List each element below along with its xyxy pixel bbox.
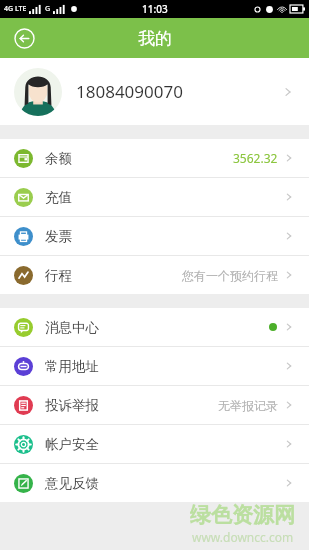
button[interactable]: 余额 [0,139,309,177]
staticText: 我的 [138,28,172,49]
staticText: 常用地址 [45,358,99,375]
button[interactable]: 18084090070 [0,58,309,125]
staticText: www.downcc.com [192,529,294,545]
button[interactable]: 帐户安全 [0,425,309,463]
staticText: 3562.32 [233,150,278,166]
staticText: 您有一个预约行程 [182,268,278,283]
staticText: 18084090070 [76,80,183,103]
staticText: 投诉举报 [45,397,99,414]
staticText: 绿色资源网 [190,502,295,528]
staticText: 余额 [45,150,72,167]
button[interactable]: 意见反馈 [0,464,309,502]
button[interactable]: 充值 [0,178,309,216]
staticText: 11:03 [142,2,168,16]
staticText: 发票 [45,228,72,245]
button[interactable]: 投诉举报 [0,386,309,424]
staticText: 充值 [45,189,72,206]
staticText: G [45,4,51,14]
staticText: 行程 [45,267,72,284]
staticText: 消息中心 [45,319,99,336]
staticText: 意见反馈 [45,475,99,492]
button[interactable]: Back [8,22,40,54]
button[interactable]: 消息中心 [0,308,309,346]
button[interactable]: 常用地址 [0,347,309,385]
button[interactable]: 发票 [0,217,309,255]
button[interactable]: 行程 [0,256,309,294]
staticText: 无举报记录 [218,398,278,413]
staticText: 4G LTE [4,4,27,14]
staticText: 帐户安全 [45,436,99,453]
